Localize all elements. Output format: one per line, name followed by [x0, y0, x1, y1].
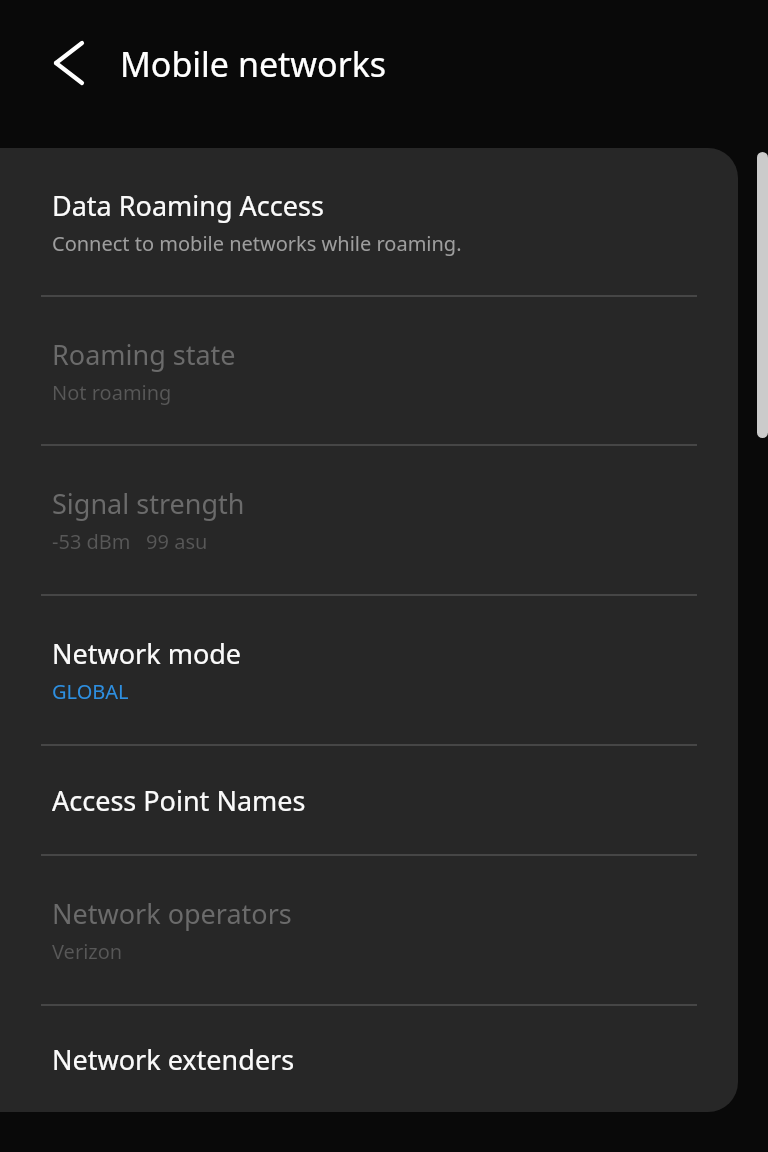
staticText: Network operators — [52, 895, 292, 932]
staticText: GLOBAL — [52, 678, 129, 705]
staticText: Signal strength — [52, 485, 245, 522]
button[interactable]: Access Point Names — [0, 746, 738, 854]
staticText: -53 dBm 99 asu — [52, 528, 208, 555]
staticText: Connect to mobile networks while roaming… — [52, 230, 462, 257]
staticText: Verizon — [52, 938, 123, 965]
staticText: Roaming state — [52, 336, 236, 373]
staticText: Not roaming — [52, 379, 172, 406]
button[interactable]: Network mode — [0, 596, 738, 744]
button[interactable]: Network extenders — [0, 1006, 738, 1112]
staticText: Access Point Names — [52, 782, 306, 819]
staticText: Mobile networks — [120, 41, 387, 87]
staticText: Network mode — [52, 635, 242, 672]
button[interactable]: Network operators — [0, 856, 738, 1004]
button[interactable]: Signal strength — [0, 446, 738, 594]
button[interactable]: Roaming state — [0, 297, 738, 444]
button[interactable]: Data Roaming Access — [0, 148, 738, 295]
staticText: Data Roaming Access — [52, 187, 324, 224]
button[interactable]: Back — [40, 35, 96, 91]
staticText: Network extenders — [52, 1041, 295, 1078]
